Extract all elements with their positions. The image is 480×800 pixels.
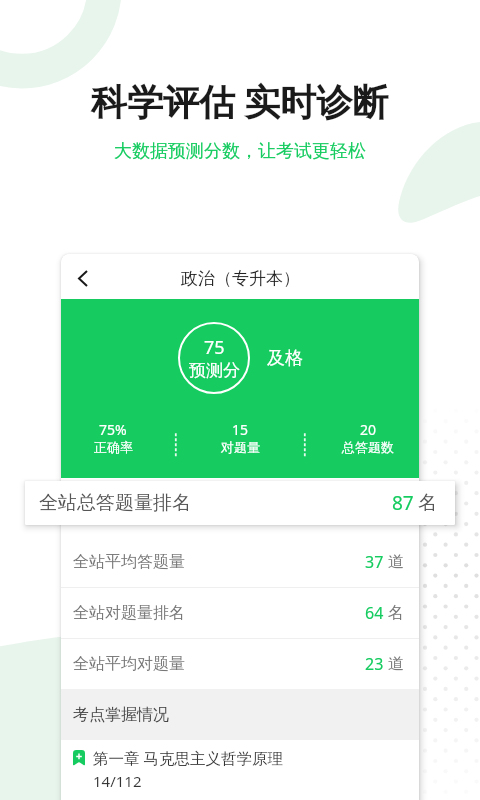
- button[interactable]: Back: [61, 254, 105, 299]
- staticText: 14/112: [93, 771, 142, 791]
- staticText: 科学评估 实时诊断: [91, 77, 389, 126]
- staticText: 全站对题量排名: [73, 603, 185, 623]
- staticText: 道: [388, 552, 404, 572]
- staticText: 全站总答题量排名: [39, 491, 191, 515]
- staticText: 名: [418, 491, 437, 515]
- staticText: 全站平均答题量: [73, 552, 185, 572]
- staticText: 政治（专升本）: [181, 268, 300, 289]
- staticText: 总答题数: [342, 439, 394, 455]
- staticText: 名: [388, 603, 404, 623]
- staticText: 第一章 马克思主义哲学原理: [93, 747, 284, 768]
- staticText: 考点掌握情况: [73, 705, 169, 725]
- staticText: 23: [365, 653, 384, 675]
- button[interactable]: 全站平均答题量: [61, 537, 419, 587]
- staticText: 道: [388, 654, 404, 674]
- staticText: 对题量: [221, 439, 260, 455]
- staticText: 全站平均对题量: [73, 654, 185, 674]
- button[interactable]: 全站对题量排名: [61, 588, 419, 638]
- staticText: 37: [365, 551, 384, 573]
- staticText: 预测分: [189, 360, 240, 381]
- staticText: 64: [365, 602, 384, 624]
- staticText: 75%: [99, 420, 127, 439]
- staticText: 15: [232, 420, 249, 439]
- button[interactable]: 全站总答题量排名: [25, 481, 455, 525]
- staticText: 75: [204, 335, 225, 360]
- staticText: 20: [360, 420, 377, 439]
- staticText: 大数据预测分数，让考试更轻松: [114, 140, 366, 163]
- staticText: 87: [392, 490, 414, 516]
- staticText: 及格: [267, 347, 303, 370]
- staticText: 正确率: [94, 439, 133, 455]
- button[interactable]: 全站平均对题量: [61, 639, 419, 689]
